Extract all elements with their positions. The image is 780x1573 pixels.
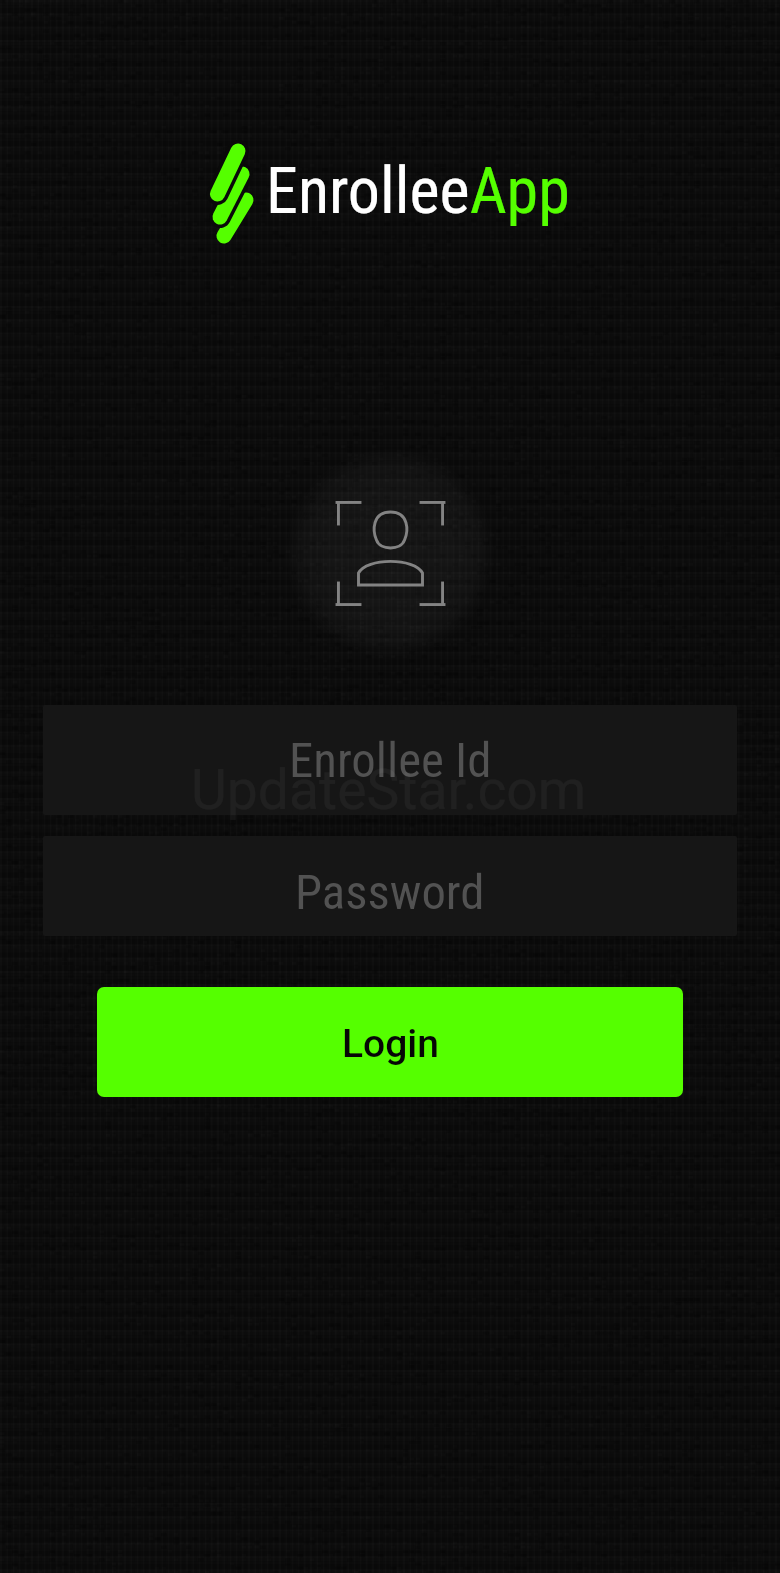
staticText: Enrollee Id (289, 732, 492, 789)
staticText: EnrolleeApp (266, 153, 570, 228)
button[interactable]: Sign in with face recognition (283, 446, 497, 660)
staticText: Login (342, 1021, 439, 1067)
button[interactable]: Login (97, 987, 683, 1097)
button[interactable]: Password (43, 836, 737, 936)
other: EnrolleeApp logo (208, 138, 258, 250)
button[interactable]: Enrollee Id (43, 705, 737, 815)
staticText: UpdateStar.com (191, 758, 587, 823)
staticText: Password (295, 864, 485, 921)
